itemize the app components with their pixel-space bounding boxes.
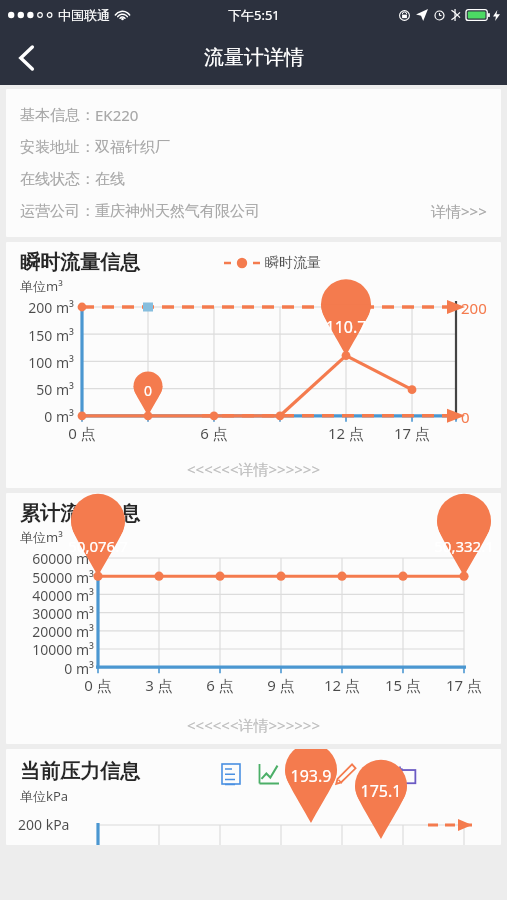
staticText: EK220 — [95, 105, 139, 125]
staticText: 12 点 — [320, 423, 372, 443]
staticText: 在线 — [95, 170, 125, 189]
staticText: 17 点 — [438, 675, 490, 695]
staticText: 0 — [461, 407, 470, 427]
staticText: 50000 m³ — [6, 568, 94, 587]
staticText: 6 点 — [194, 675, 246, 695]
staticText: 0 — [128, 381, 168, 400]
staticText: 9 点 — [255, 675, 307, 695]
staticText: 瞬时流量信息 — [20, 250, 140, 275]
staticText: 0 点 — [56, 423, 108, 443]
staticText: <<<<<<详情>>>>>> — [6, 715, 501, 735]
button[interactable]: <<<<<<详情>>>>>> — [6, 706, 501, 744]
staticText: 60000 m³ — [6, 549, 94, 568]
staticText: 15 点 — [377, 675, 429, 695]
staticText: 20000 m³ — [6, 622, 94, 641]
staticText: 在线状态： — [20, 170, 95, 189]
button[interactable]: Edit — [332, 761, 358, 787]
staticText: 0 m³ — [6, 659, 94, 678]
staticText: 中国联通 — [58, 7, 110, 23]
staticText: 100 m³ — [6, 353, 74, 372]
staticText: 双福针织厂 — [95, 138, 170, 157]
staticText: 150 m³ — [6, 326, 74, 345]
staticText: 运营公司： — [20, 202, 95, 221]
staticText: 单位kPa — [20, 787, 69, 805]
staticText: 累计流量信息 — [20, 501, 140, 526]
staticText: 3 点 — [133, 675, 185, 695]
staticText: <<<<<<详情>>>>>> — [6, 459, 501, 479]
staticText: 50,332.1 — [424, 536, 501, 556]
staticText: 单位m³ — [20, 528, 63, 546]
staticText: 193.9 — [281, 765, 341, 787]
staticText: 安装地址： — [20, 138, 95, 157]
button[interactable]: Back — [0, 30, 52, 85]
staticText: 200 — [461, 298, 487, 318]
staticText: 6 点 — [188, 423, 240, 443]
staticText: 17 点 — [386, 423, 438, 443]
staticText: 30000 m³ — [6, 604, 94, 623]
staticText: 流量计详情 — [204, 45, 304, 70]
staticText: 重庆神州天然气有限公司 — [95, 202, 260, 221]
staticText: 0 m³ — [6, 407, 74, 426]
staticText: 基本信息： — [20, 106, 95, 125]
staticText: 175.1 — [351, 780, 411, 802]
button[interactable]: List — [218, 761, 244, 787]
button[interactable]: <<<<<<详情>>>>>> — [6, 450, 501, 488]
staticText: 50 m³ — [6, 380, 74, 399]
staticText: 12 点 — [316, 675, 368, 695]
staticText: 单位m³ — [20, 277, 63, 295]
staticText: 110.7 — [316, 316, 376, 338]
staticText: 200 m³ — [6, 298, 74, 317]
staticText: 10000 m³ — [6, 640, 94, 659]
button[interactable]: Bar chart — [294, 761, 320, 787]
button[interactable]: 详情>>> — [429, 197, 489, 225]
staticText: 下午5:51 — [228, 6, 280, 24]
staticText: 200 kPa — [18, 815, 70, 834]
staticText: 40000 m³ — [6, 586, 94, 605]
button[interactable]: Line chart — [256, 761, 282, 787]
staticText: 详情>>> — [431, 201, 487, 221]
staticText: 当前压力信息 — [20, 759, 140, 784]
staticText: 0 点 — [72, 675, 124, 695]
staticText: 50,076.7 — [58, 536, 138, 556]
button[interactable]: Add — [394, 761, 420, 787]
staticText: 瞬时流量 — [265, 254, 321, 272]
